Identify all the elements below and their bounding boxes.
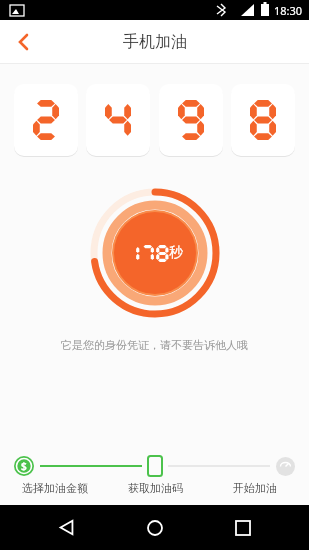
staticText: 开始加油 — [233, 481, 277, 495]
button[interactable]: Refresh code — [90, 188, 220, 318]
button[interactable]: Home — [132, 505, 178, 550]
staticText: 它是您的身份凭证，请不要告诉他人哦 — [0, 338, 309, 352]
staticText: 18:30 — [274, 3, 303, 18]
staticText: 秒 — [169, 244, 183, 262]
button[interactable]: 获取加油码 — [105, 481, 205, 495]
button[interactable]: Back — [43, 505, 89, 550]
button[interactable]: Recents — [220, 505, 266, 550]
staticText: $ — [21, 459, 27, 473]
button[interactable]: 开始加油 — [205, 481, 305, 495]
button[interactable]: Back — [0, 20, 44, 63]
staticText: 获取加油码 — [128, 481, 183, 495]
button[interactable]: 选择加油金额 — [4, 481, 105, 495]
staticText: 手机加油 — [123, 32, 187, 52]
staticText: 选择加油金额 — [22, 481, 88, 495]
